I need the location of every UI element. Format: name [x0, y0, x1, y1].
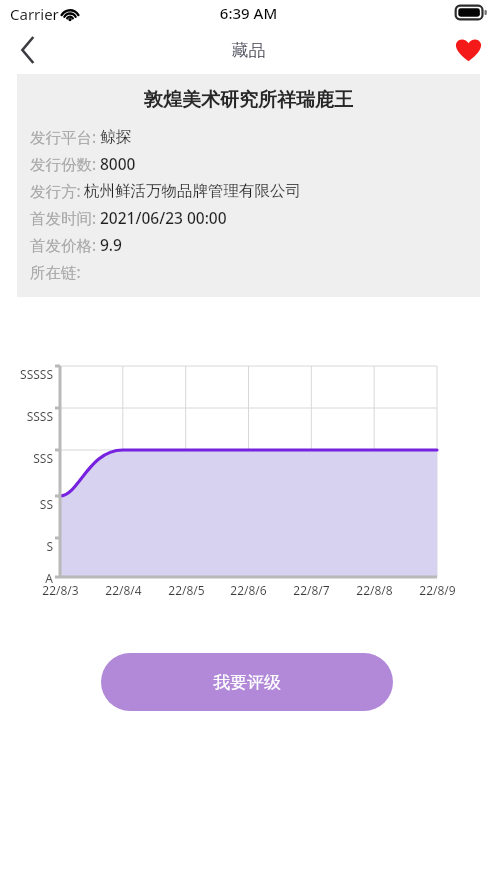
- staticText: 2021/06/23 00:00: [100, 207, 227, 228]
- staticText: S: [46, 538, 53, 554]
- staticText: 9.9: [100, 234, 122, 255]
- staticText: 发行方:: [30, 180, 81, 201]
- staticText: 藏品: [0, 40, 497, 61]
- staticText: 敦煌美术研究所祥瑞鹿王: [17, 88, 480, 112]
- staticText: 22/8/4: [105, 582, 142, 598]
- staticText: Carrier: [10, 4, 59, 24]
- staticText: 我要评级: [213, 672, 281, 693]
- staticText: 22/8/9: [419, 582, 456, 598]
- staticText: 22/8/5: [168, 582, 205, 598]
- staticText: 发行平台:: [30, 126, 97, 147]
- staticText: 所在链:: [30, 261, 81, 282]
- staticText: 发行份数:: [30, 153, 97, 174]
- staticText: 首发价格:: [30, 234, 97, 255]
- staticText: 首发时间:: [30, 207, 97, 228]
- staticText: 杭州鲜活万物品牌管理有限公司: [84, 181, 301, 201]
- staticText: 22/8/6: [230, 582, 267, 598]
- staticText: A: [45, 570, 53, 586]
- staticText: SSSSS: [20, 366, 53, 382]
- staticText: 22/8/3: [42, 582, 79, 598]
- staticText: 22/8/7: [293, 582, 330, 598]
- staticText: SS: [39, 496, 53, 512]
- staticText: 6:39 AM: [0, 3, 497, 23]
- button[interactable]: Favorite: [446, 28, 490, 72]
- staticText: 22/8/8: [356, 582, 393, 598]
- button[interactable]: 我要评级: [101, 653, 393, 711]
- button[interactable]: Back: [6, 28, 50, 72]
- staticText: 8000: [100, 153, 136, 174]
- staticText: SSS: [33, 450, 53, 466]
- staticText: SSSS: [26, 408, 53, 424]
- staticText: 鲸探: [100, 127, 131, 147]
